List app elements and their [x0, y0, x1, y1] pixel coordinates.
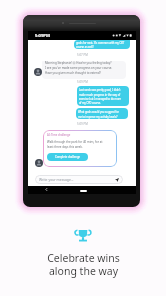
staticText: 5:09 PM — [77, 80, 88, 84]
staticText: 5:09PM — [35, 33, 50, 39]
staticText: 5:09 PM — [77, 122, 88, 126]
button[interactable]: What goals would you suggest for me to i… — [76, 108, 128, 119]
staticText: goals for next. It's common with my CBT … — [76, 41, 125, 49]
staticText: What goals would you suggest for me to i… — [78, 110, 119, 118]
other: Trophy — [74, 226, 92, 244]
staticText: Write your message... — [39, 177, 74, 182]
staticText: Complete challenge — [55, 155, 81, 159]
button[interactable]: Last week was pretty good, I didn't make… — [77, 86, 129, 106]
staticText: Walk through the park for 40 mins, for a… — [47, 140, 103, 149]
staticText: Celebrate wins along the way — [47, 251, 120, 278]
button[interactable]: goals for next. It's common with my CBT … — [74, 40, 130, 49]
staticText: AI: Time challenge — [47, 133, 71, 137]
button[interactable]: Complete challenge — [47, 153, 88, 161]
button[interactable]: Back — [44, 187, 49, 192]
staticText: 5:07 PM — [77, 53, 88, 57]
button[interactable]: AI: Time challenge — [43, 130, 117, 167]
staticText: Last week was pretty good, I didn't make… — [79, 88, 121, 104]
button[interactable] — [42, 61, 126, 79]
staticText: Morning Stephanie! 😊 How're you feeling … — [45, 61, 113, 75]
other: Send — [115, 178, 119, 182]
button[interactable]: Write your message... — [35, 175, 123, 184]
